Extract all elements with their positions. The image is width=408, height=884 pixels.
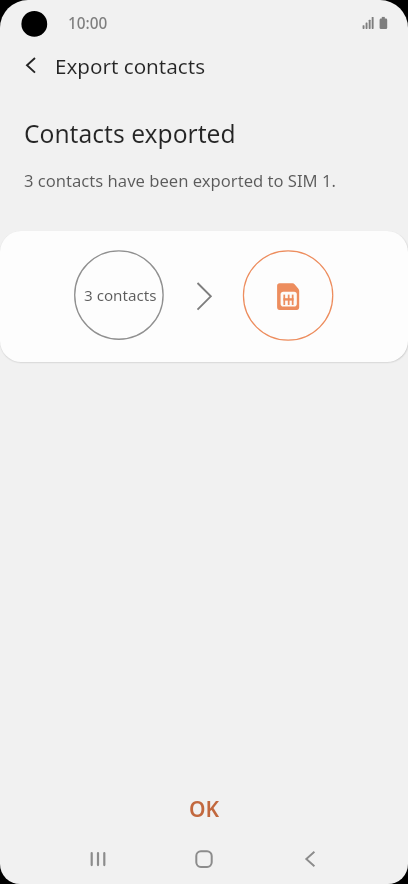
- button[interactable]: Navigate up: [8, 42, 54, 88]
- staticText: 10:00: [68, 13, 108, 34]
- button[interactable]: Back: [286, 835, 334, 883]
- button[interactable]: Home: [180, 835, 228, 883]
- button[interactable]: OK: [0, 789, 408, 829]
- button[interactable]: Recent apps: [74, 835, 122, 883]
- staticText: OK: [189, 795, 220, 824]
- staticText: Export contacts: [55, 52, 206, 80]
- staticText: 3 contacts have been exported to SIM 1.: [24, 169, 336, 192]
- staticText: Contacts exported: [24, 117, 236, 151]
- staticText: 3 contacts: [84, 285, 157, 306]
